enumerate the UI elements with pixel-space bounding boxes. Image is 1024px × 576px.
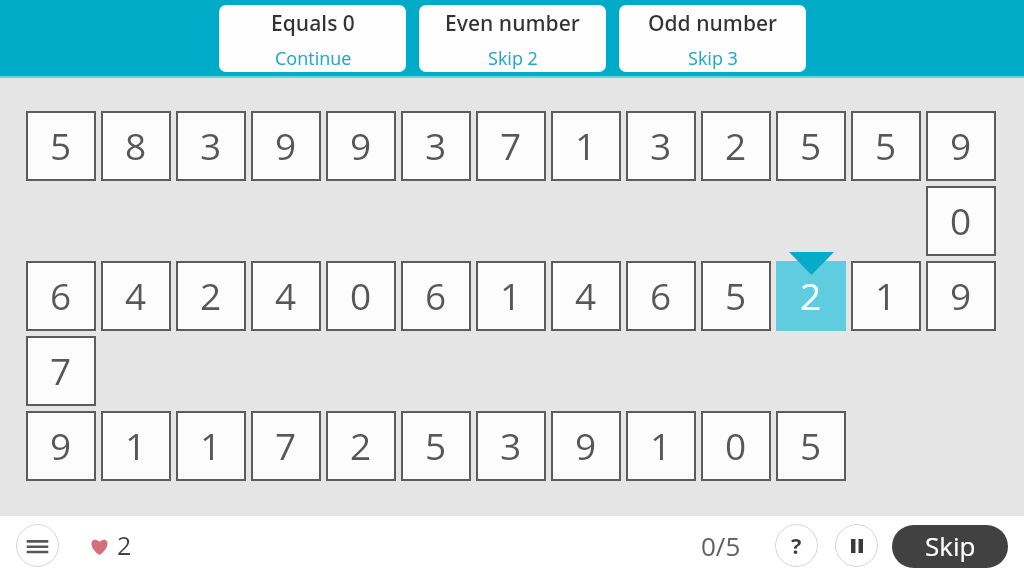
button[interactable]: Help <box>775 524 818 567</box>
button[interactable]: 5 <box>776 411 846 481</box>
button[interactable]: 1 <box>476 261 546 331</box>
staticText: 2 <box>725 120 747 170</box>
staticText: 5 <box>875 120 897 170</box>
staticText: 7 <box>50 345 72 395</box>
button[interactable]: 1 <box>626 411 696 481</box>
staticText: 0 <box>350 270 372 320</box>
button[interactable]: 5 <box>401 411 471 481</box>
button[interactable]: 1 <box>101 411 171 481</box>
staticText: 4 <box>125 270 147 320</box>
staticText: 0 <box>725 420 747 470</box>
button[interactable]: Equals 0 <box>219 5 406 72</box>
staticText: 2 <box>800 270 822 320</box>
button[interactable]: 4 <box>551 261 621 331</box>
staticText: 4 <box>575 270 597 320</box>
button[interactable]: 5 <box>701 261 771 331</box>
staticText: 1 <box>500 270 522 320</box>
button[interactable]: 0 <box>701 411 771 481</box>
button[interactable]: 7 <box>476 111 546 181</box>
button[interactable]: 2 <box>176 261 246 331</box>
button[interactable]: 6 <box>401 261 471 331</box>
button[interactable]: Odd number <box>619 5 806 72</box>
staticText: 5 <box>425 420 447 470</box>
staticText: 2 <box>117 528 132 562</box>
staticText: 9 <box>350 120 372 170</box>
staticText: 3 <box>500 420 522 470</box>
button[interactable]: Even number <box>419 5 606 72</box>
button[interactable]: 5 <box>851 111 921 181</box>
staticText: 4 <box>275 270 297 320</box>
button[interactable]: 3 <box>401 111 471 181</box>
button[interactable]: 8 <box>101 111 171 181</box>
staticText: 1 <box>200 420 222 470</box>
staticText: 2 <box>200 270 222 320</box>
staticText: 3 <box>200 120 222 170</box>
staticText: 1 <box>650 420 672 470</box>
button[interactable]: 6 <box>626 261 696 331</box>
staticText: Skip 2 <box>488 46 538 71</box>
staticText: 3 <box>425 120 447 170</box>
button[interactable]: 9 <box>326 111 396 181</box>
staticText: 1 <box>575 120 597 170</box>
button[interactable]: 2 <box>326 411 396 481</box>
staticText: Continue <box>275 46 352 71</box>
staticText: Odd number <box>648 9 778 38</box>
staticText: 0 <box>950 195 972 245</box>
staticText: Equals 0 <box>271 9 355 38</box>
button[interactable]: 2 <box>776 261 846 331</box>
staticText: 6 <box>50 270 72 320</box>
staticText: 5 <box>50 120 72 170</box>
button[interactable]: 9 <box>251 111 321 181</box>
staticText: ? <box>791 530 802 560</box>
button[interactable]: Pause <box>835 524 878 567</box>
button[interactable]: 2 <box>701 111 771 181</box>
button[interactable]: Menu <box>16 524 59 567</box>
staticText: Skip 3 <box>688 46 738 71</box>
button[interactable]: 1 <box>176 411 246 481</box>
staticText: 0/5 <box>701 528 741 563</box>
staticText: 2 <box>350 420 372 470</box>
button[interactable]: 1 <box>851 261 921 331</box>
button[interactable]: 4 <box>101 261 171 331</box>
staticText: 7 <box>500 120 522 170</box>
button[interactable]: 7 <box>251 411 321 481</box>
button[interactable]: 9 <box>926 111 996 181</box>
button[interactable]: Skip <box>892 525 1008 568</box>
staticText: 9 <box>575 420 597 470</box>
button[interactable]: 9 <box>551 411 621 481</box>
button[interactable]: 3 <box>626 111 696 181</box>
button[interactable]: 9 <box>926 261 996 331</box>
staticText: 6 <box>425 270 447 320</box>
staticText: 1 <box>125 420 147 470</box>
staticText: Even number <box>445 9 580 38</box>
button[interactable]: 0 <box>926 186 996 256</box>
staticText: 5 <box>725 270 747 320</box>
staticText: 1 <box>875 270 897 320</box>
button[interactable]: 6 <box>26 261 96 331</box>
staticText: 6 <box>650 270 672 320</box>
staticText: Skip <box>925 528 976 563</box>
staticText: 5 <box>800 420 822 470</box>
button[interactable]: 3 <box>176 111 246 181</box>
staticText: 3 <box>650 120 672 170</box>
staticText: 9 <box>950 270 972 320</box>
button[interactable]: 1 <box>551 111 621 181</box>
button[interactable]: 7 <box>26 336 96 406</box>
staticText: 5 <box>800 120 822 170</box>
button[interactable]: 0 <box>326 261 396 331</box>
button[interactable]: 5 <box>26 111 96 181</box>
button[interactable]: 5 <box>776 111 846 181</box>
staticText: 8 <box>125 120 147 170</box>
staticText: 9 <box>950 120 972 170</box>
staticText: 9 <box>275 120 297 170</box>
button[interactable]: 3 <box>476 411 546 481</box>
button[interactable]: 9 <box>26 411 96 481</box>
staticText: 9 <box>50 420 72 470</box>
staticText: 7 <box>275 420 297 470</box>
button[interactable]: 4 <box>251 261 321 331</box>
